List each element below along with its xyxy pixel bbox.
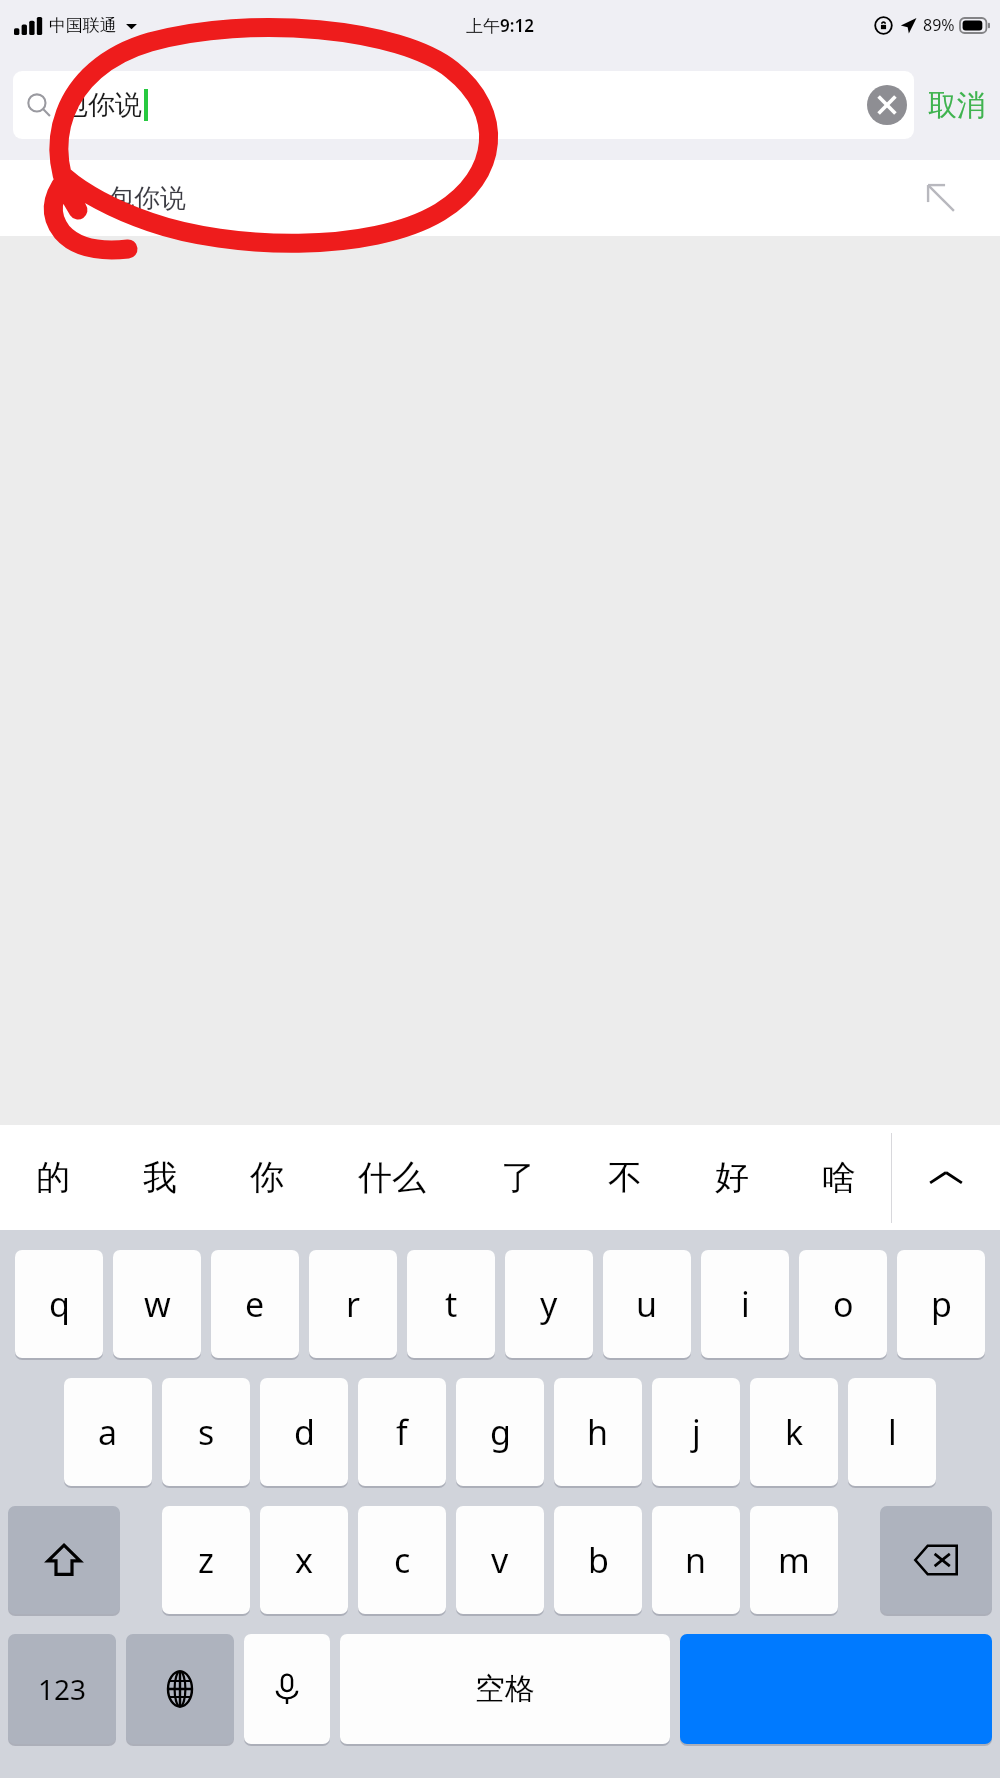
staticText: 了 bbox=[501, 1156, 535, 1199]
button[interactable]: x bbox=[260, 1506, 348, 1614]
button[interactable]: z bbox=[162, 1506, 250, 1614]
staticText: v bbox=[491, 1537, 509, 1583]
staticText: h bbox=[587, 1409, 609, 1455]
staticText: 不 bbox=[608, 1156, 642, 1199]
button[interactable]: p bbox=[897, 1250, 985, 1358]
staticText: 的 bbox=[36, 1156, 70, 1199]
button[interactable]: l bbox=[848, 1378, 936, 1486]
button[interactable]: v bbox=[456, 1506, 544, 1614]
staticText: s bbox=[198, 1409, 215, 1455]
staticText: y bbox=[540, 1281, 558, 1327]
staticText: m bbox=[778, 1537, 810, 1583]
button[interactable]: Voice input bbox=[244, 1634, 330, 1744]
staticText: 中国联通 bbox=[49, 15, 117, 36]
button[interactable]: j bbox=[652, 1378, 740, 1486]
staticText: g bbox=[490, 1409, 511, 1455]
staticText: b bbox=[588, 1537, 609, 1583]
button[interactable]: 了 bbox=[464, 1125, 571, 1230]
button[interactable]: Enter bbox=[680, 1634, 992, 1744]
button[interactable]: 好 bbox=[678, 1125, 785, 1230]
other: Fill search box bbox=[924, 181, 958, 215]
staticText: w bbox=[144, 1281, 171, 1327]
button[interactable]: b bbox=[554, 1506, 642, 1614]
staticText: z bbox=[198, 1537, 214, 1583]
button[interactable]: 空格 bbox=[340, 1634, 670, 1744]
button[interactable]: w bbox=[113, 1250, 201, 1358]
button[interactable]: n bbox=[652, 1506, 740, 1614]
button[interactable]: 123 bbox=[8, 1634, 116, 1744]
button[interactable]: d bbox=[260, 1378, 348, 1486]
button[interactable]: 不 bbox=[571, 1125, 678, 1230]
staticText: k bbox=[785, 1409, 804, 1455]
button[interactable]: y bbox=[505, 1250, 593, 1358]
button[interactable]: Expand candidates bbox=[892, 1125, 1000, 1230]
staticText: x bbox=[295, 1537, 313, 1583]
staticText: j bbox=[692, 1409, 701, 1455]
button[interactable]: 你 bbox=[213, 1125, 320, 1230]
staticText: 包你说 bbox=[61, 88, 142, 122]
button[interactable]: 取消 bbox=[928, 71, 986, 139]
button[interactable]: 什么 bbox=[320, 1125, 464, 1230]
button[interactable]: u bbox=[603, 1250, 691, 1358]
staticText: 空格 bbox=[475, 1670, 535, 1708]
button[interactable]: 我 bbox=[106, 1125, 213, 1230]
button[interactable]: k bbox=[750, 1378, 838, 1486]
staticText: p bbox=[931, 1281, 952, 1327]
staticText: q bbox=[49, 1281, 70, 1327]
button[interactable]: Shift bbox=[8, 1506, 120, 1614]
staticText: n bbox=[685, 1537, 707, 1583]
button[interactable]: m bbox=[750, 1506, 838, 1614]
button[interactable]: c bbox=[358, 1506, 446, 1614]
button[interactable]: t bbox=[407, 1250, 495, 1358]
button[interactable]: 包你说 bbox=[13, 71, 914, 139]
button[interactable]: q bbox=[15, 1250, 103, 1358]
button[interactable]: Backspace bbox=[880, 1506, 992, 1614]
button[interactable]: 包你说 bbox=[0, 160, 1000, 236]
staticText: a bbox=[98, 1409, 118, 1455]
staticText: 包你说 bbox=[108, 182, 186, 215]
staticText: e bbox=[245, 1281, 265, 1327]
staticText: 上午9:12 bbox=[466, 14, 534, 37]
staticText: c bbox=[394, 1537, 411, 1583]
button[interactable]: 啥 bbox=[785, 1125, 892, 1230]
button[interactable]: g bbox=[456, 1378, 544, 1486]
staticText: 什么 bbox=[358, 1156, 426, 1199]
staticText: t bbox=[445, 1281, 458, 1327]
staticText: 你 bbox=[250, 1156, 284, 1199]
button[interactable]: f bbox=[358, 1378, 446, 1486]
button[interactable]: o bbox=[799, 1250, 887, 1358]
button[interactable]: h bbox=[554, 1378, 642, 1486]
staticText: i bbox=[741, 1281, 750, 1327]
staticText: f bbox=[396, 1409, 408, 1455]
staticText: 啥 bbox=[822, 1156, 856, 1199]
button[interactable]: a bbox=[64, 1378, 152, 1486]
button[interactable]: i bbox=[701, 1250, 789, 1358]
button[interactable]: r bbox=[309, 1250, 397, 1358]
staticText: 89% bbox=[923, 14, 955, 36]
staticText: 我 bbox=[143, 1156, 177, 1199]
button[interactable]: 的 bbox=[0, 1125, 106, 1230]
staticText: l bbox=[888, 1409, 897, 1455]
staticText: u bbox=[636, 1281, 658, 1327]
button[interactable]: Switch keyboard bbox=[126, 1634, 234, 1744]
button[interactable]: e bbox=[211, 1250, 299, 1358]
staticText: d bbox=[294, 1409, 315, 1455]
staticText: 好 bbox=[715, 1156, 749, 1199]
staticText: o bbox=[833, 1281, 854, 1327]
staticText: r bbox=[346, 1281, 361, 1327]
button[interactable]: s bbox=[162, 1378, 250, 1486]
staticText: 取消 bbox=[928, 87, 986, 124]
button[interactable]: Clear text bbox=[865, 83, 909, 127]
staticText: 123 bbox=[38, 1670, 87, 1708]
